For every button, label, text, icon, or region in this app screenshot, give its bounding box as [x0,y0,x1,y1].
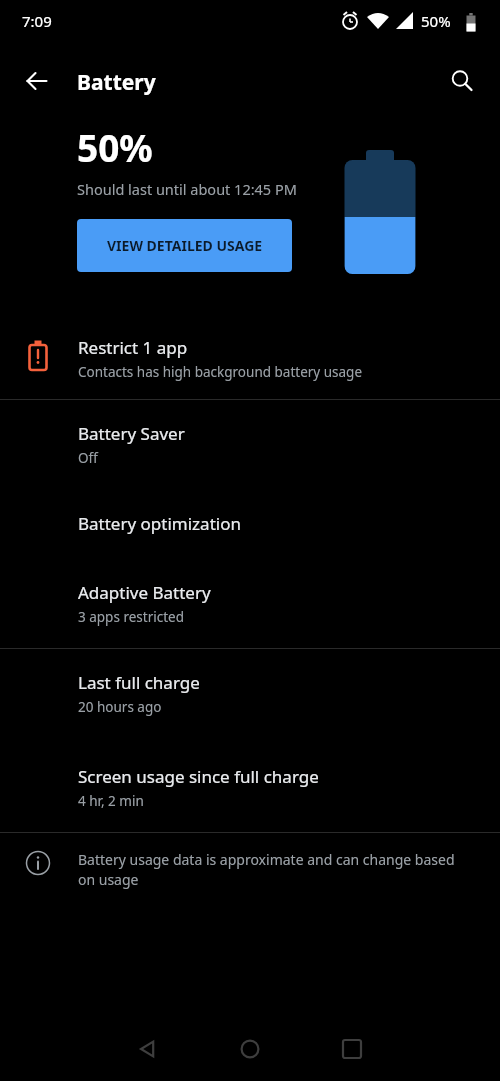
staticText: Adaptive Battery [78,581,211,604]
staticText: Restrict 1 app [78,336,188,359]
button[interactable]: Back [113,1017,183,1081]
staticText: Should last until about 12:45 PM [77,179,297,199]
staticText: 50% [77,122,153,172]
staticText: Contacts has high background battery usa… [78,363,363,381]
staticText: 20 hours ago [78,698,162,716]
button[interactable]: Recent apps [317,1017,387,1081]
button[interactable]: Search [438,57,486,105]
staticText: Off [78,449,98,467]
button[interactable]: Battery optimization [0,494,500,565]
button[interactable]: VIEW DETAILED USAGE [77,219,292,272]
staticText: Battery Saver [78,422,185,445]
staticText: 7:09 [22,11,52,31]
staticText: VIEW DETAILED USAGE [107,236,263,255]
staticText: 50% [421,11,451,31]
button[interactable]: Restrict 1 app [0,328,500,399]
staticText: Screen usage since full charge [78,765,319,788]
staticText: Battery usage data is approximate and ca… [78,850,472,889]
button[interactable]: Back [13,57,61,105]
button[interactable]: Home [215,1017,285,1081]
button[interactable]: Last full charge [0,649,500,743]
staticText: Battery [77,68,156,97]
staticText: 3 apps restricted [78,608,184,626]
staticText: Last full charge [78,671,200,694]
button[interactable]: Battery Saver [0,400,500,494]
button[interactable]: Adaptive Battery [0,565,500,648]
staticText: 4 hr, 2 min [78,792,144,810]
button[interactable]: Screen usage since full charge [0,743,500,832]
staticText: Battery optimization [78,512,241,535]
